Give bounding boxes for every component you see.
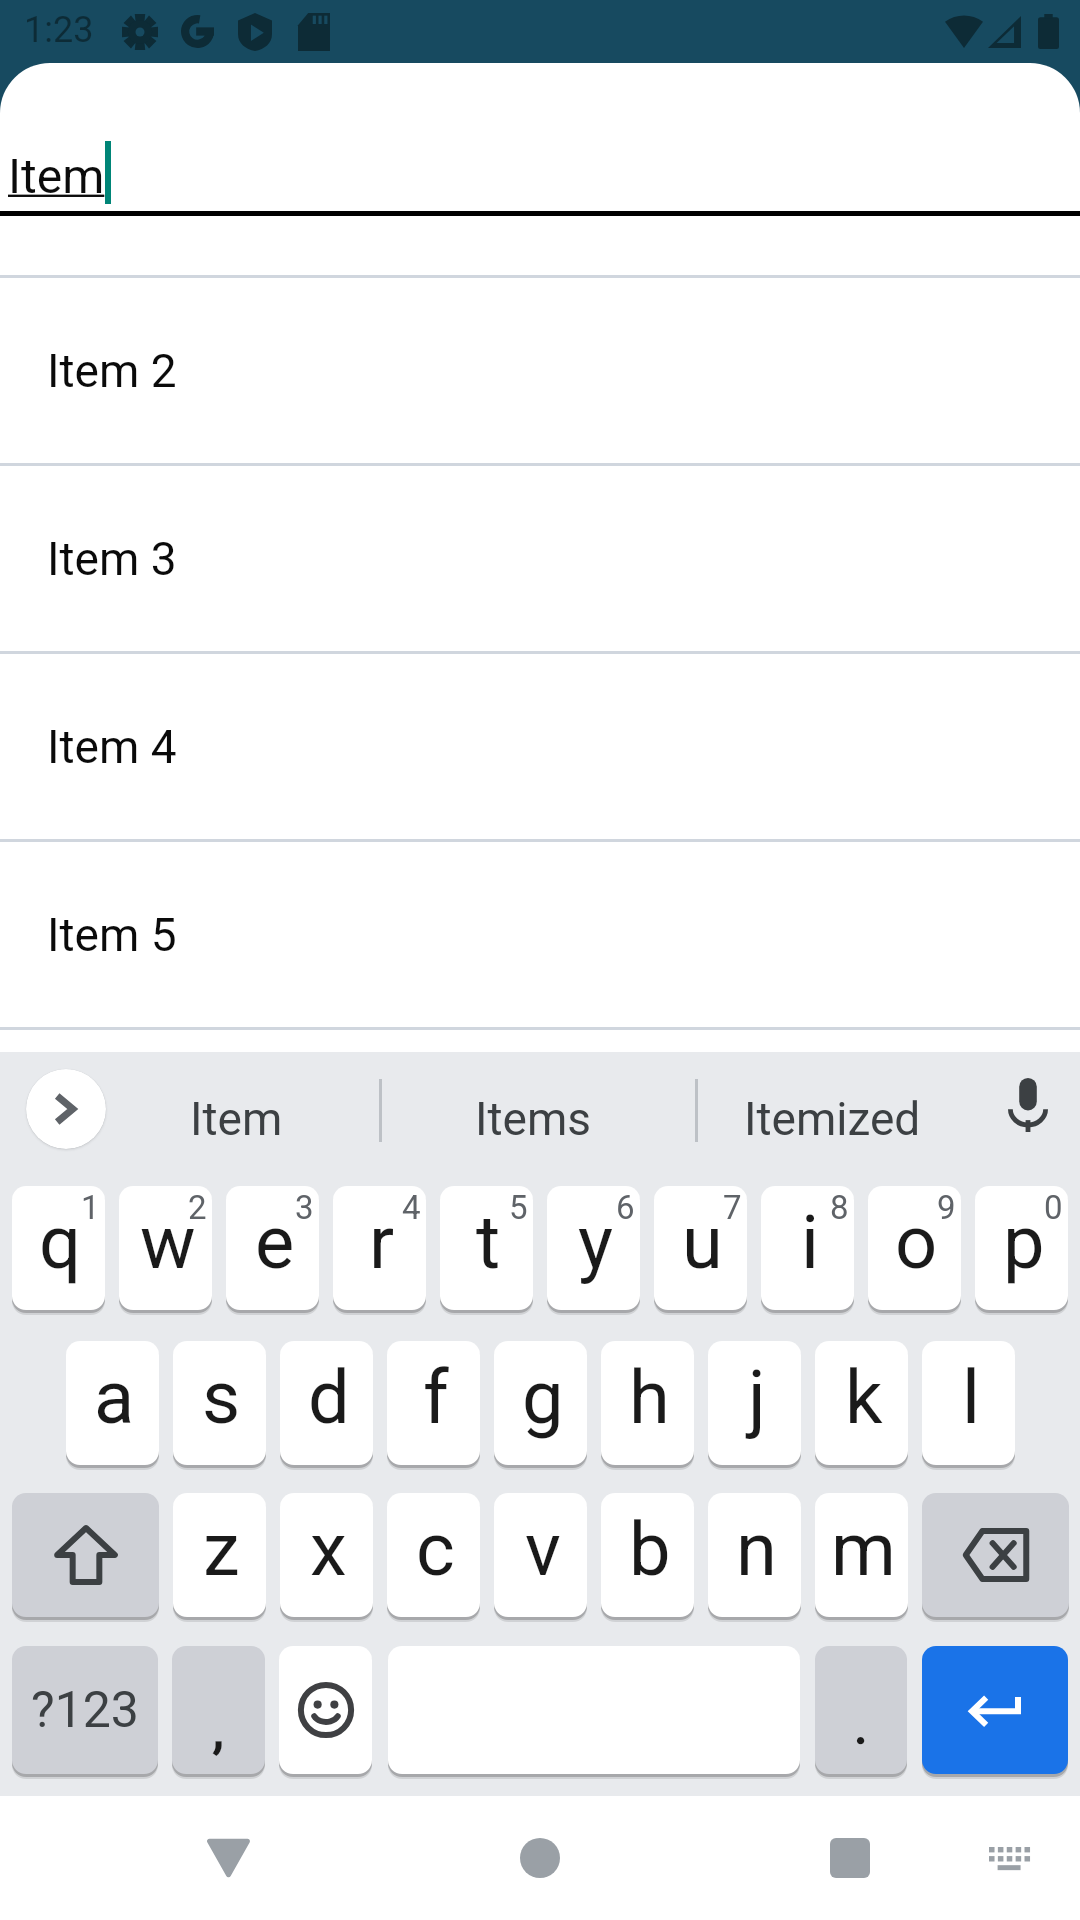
staticText: Item 5 bbox=[47, 908, 177, 962]
button[interactable]: Itemized bbox=[689, 1052, 975, 1186]
button[interactable]: k bbox=[815, 1341, 908, 1465]
staticText: f bbox=[423, 1354, 449, 1441]
staticText: y bbox=[578, 1199, 614, 1286]
button[interactable]: Item 5 bbox=[0, 842, 1080, 1027]
staticText: . bbox=[854, 1695, 868, 1756]
staticText: s bbox=[202, 1354, 241, 1441]
staticText: 3 bbox=[295, 1188, 314, 1227]
staticText: z bbox=[203, 1506, 240, 1593]
button[interactable]: Backspace bbox=[922, 1493, 1069, 1617]
staticText: Item 3 bbox=[47, 532, 177, 586]
button[interactable]: Item bbox=[106, 1052, 366, 1186]
button[interactable]: . bbox=[815, 1646, 907, 1774]
staticText: h bbox=[629, 1354, 670, 1441]
button[interactable]: w bbox=[119, 1186, 212, 1310]
button[interactable]: d bbox=[280, 1341, 373, 1465]
staticText: e bbox=[255, 1199, 295, 1286]
button[interactable]: , bbox=[172, 1646, 265, 1774]
staticText: c bbox=[416, 1506, 455, 1593]
button[interactable]: g bbox=[494, 1341, 587, 1465]
staticText: 2 bbox=[188, 1188, 207, 1227]
button[interactable]: a bbox=[66, 1341, 159, 1465]
button[interactable]: Switch keyboard bbox=[964, 1813, 1054, 1903]
staticText: 0 bbox=[1044, 1188, 1063, 1227]
staticText: b bbox=[629, 1506, 671, 1593]
staticText: n bbox=[736, 1506, 777, 1593]
button[interactable]: Items bbox=[376, 1052, 690, 1186]
staticText: w bbox=[140, 1199, 196, 1286]
button[interactable]: s bbox=[173, 1341, 266, 1465]
button[interactable]: e bbox=[226, 1186, 319, 1310]
button[interactable]: Item 3 bbox=[0, 466, 1080, 651]
button[interactable]: u bbox=[654, 1186, 747, 1310]
button[interactable]: z bbox=[173, 1493, 266, 1617]
button[interactable]: Recent apps bbox=[800, 1808, 900, 1908]
button[interactable]: j bbox=[708, 1341, 801, 1465]
button[interactable]: x bbox=[280, 1493, 373, 1617]
button[interactable]: o bbox=[868, 1186, 961, 1310]
staticText: Item 2 bbox=[47, 344, 177, 398]
button[interactable]: n bbox=[708, 1493, 801, 1617]
staticText: k bbox=[845, 1354, 883, 1441]
staticText: 5 bbox=[509, 1188, 528, 1227]
button[interactable]: Voice input bbox=[985, 1062, 1070, 1147]
button[interactable]: Enter bbox=[922, 1646, 1068, 1774]
button[interactable]: Emoji bbox=[279, 1646, 372, 1774]
button[interactable]: r bbox=[333, 1186, 426, 1310]
button[interactable]: c bbox=[387, 1493, 480, 1617]
button[interactable]: i bbox=[761, 1186, 854, 1310]
staticText: u bbox=[682, 1199, 723, 1286]
button[interactable]: Shift bbox=[12, 1493, 159, 1617]
button[interactable]: Home bbox=[490, 1808, 590, 1908]
staticText: Item bbox=[8, 148, 105, 204]
staticText: d bbox=[308, 1354, 350, 1441]
staticText: 4 bbox=[402, 1188, 421, 1227]
button[interactable]: t bbox=[440, 1186, 533, 1310]
staticText: t bbox=[476, 1199, 501, 1286]
staticText: i bbox=[801, 1199, 819, 1286]
staticText: l bbox=[962, 1354, 980, 1441]
button[interactable]: m bbox=[815, 1493, 908, 1617]
button[interactable]: Item 2 bbox=[0, 278, 1080, 463]
button[interactable]: f bbox=[387, 1341, 480, 1465]
staticText: x bbox=[310, 1506, 347, 1593]
staticText: 8 bbox=[830, 1188, 849, 1227]
staticText: g bbox=[522, 1354, 564, 1441]
staticText: m bbox=[831, 1506, 896, 1593]
staticText: Items bbox=[475, 1092, 592, 1146]
staticText: j bbox=[748, 1354, 766, 1441]
button[interactable]: y bbox=[547, 1186, 640, 1310]
staticText: v bbox=[525, 1506, 561, 1593]
staticText: ?123 bbox=[31, 1681, 139, 1740]
button[interactable]: Item 4 bbox=[0, 654, 1080, 839]
staticText: p bbox=[1003, 1199, 1045, 1286]
button[interactable]: More suggestions bbox=[26, 1069, 106, 1149]
button[interactable]: v bbox=[494, 1493, 587, 1617]
staticText: q bbox=[39, 1199, 82, 1286]
button[interactable]: Hide keyboard bbox=[178, 1808, 278, 1908]
button[interactable]: p bbox=[975, 1186, 1068, 1310]
staticText: a bbox=[94, 1354, 135, 1441]
button[interactable]: q bbox=[12, 1186, 105, 1310]
staticText: 7 bbox=[723, 1188, 742, 1227]
staticText: , bbox=[213, 1700, 224, 1761]
button[interactable]: h bbox=[601, 1341, 694, 1465]
staticText: 9 bbox=[937, 1188, 956, 1227]
staticText: 1 bbox=[81, 1188, 100, 1227]
staticText: Itemized bbox=[744, 1092, 921, 1146]
staticText: r bbox=[369, 1199, 395, 1286]
staticText: Item bbox=[190, 1092, 283, 1146]
button[interactable]: b bbox=[601, 1493, 694, 1617]
staticText: 1:23 bbox=[24, 9, 94, 51]
staticText: Item 4 bbox=[47, 720, 177, 774]
button[interactable]: l bbox=[922, 1341, 1015, 1465]
button[interactable]: ?123 bbox=[12, 1646, 158, 1774]
staticText: o bbox=[895, 1199, 938, 1286]
staticText: 6 bbox=[616, 1188, 635, 1227]
